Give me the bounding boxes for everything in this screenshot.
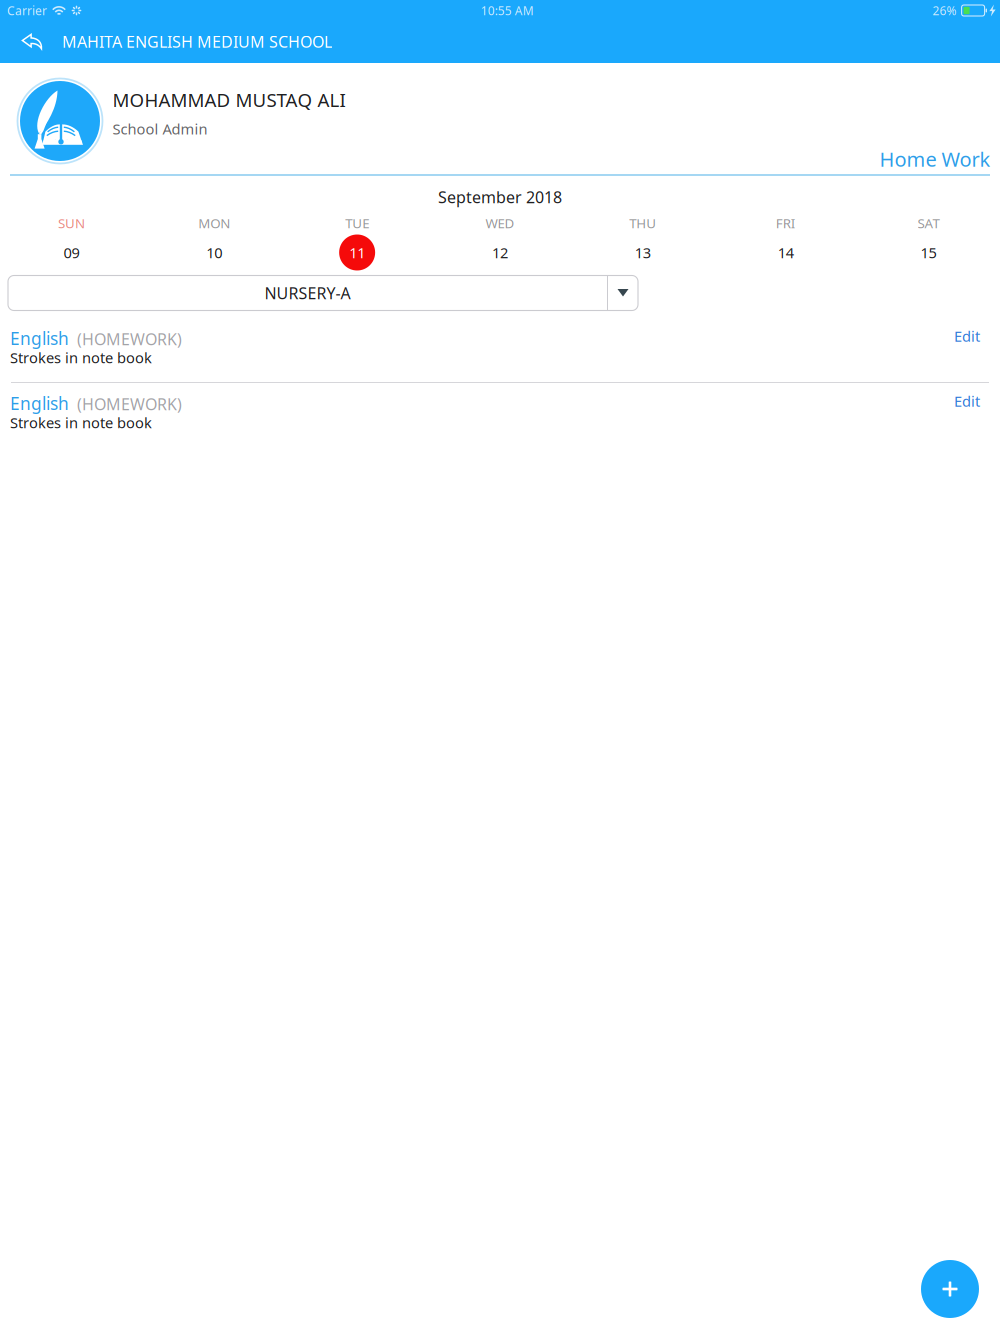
staticText: SUN <box>58 214 85 232</box>
staticText: Edit <box>954 391 980 411</box>
button[interactable]: Back <box>10 21 54 62</box>
staticText: 10 <box>206 243 222 262</box>
button[interactable]: Add homework <box>921 1260 979 1318</box>
button[interactable]: Home Work <box>872 142 997 176</box>
staticText: MON <box>198 214 230 232</box>
staticText: SAT <box>918 214 940 232</box>
button[interactable]: English <box>0 318 1000 382</box>
staticText: 11 <box>349 243 365 262</box>
button[interactable]: SUN <box>0 212 143 271</box>
button[interactable]: English <box>0 383 1000 447</box>
staticText: 13 <box>635 243 651 262</box>
button[interactable]: NURSERY-A <box>8 275 638 310</box>
staticText: September 2018 <box>438 186 562 208</box>
staticText: English <box>10 327 69 350</box>
staticText: MOHAMMAD MUSTAQ ALI <box>112 87 345 112</box>
staticText: School Admin <box>112 119 207 139</box>
button[interactable]: MON <box>143 212 286 271</box>
staticText: (HOMEWORK) <box>69 328 182 350</box>
staticText: 26% <box>933 2 957 18</box>
staticText: THU <box>629 214 656 232</box>
button[interactable]: WED <box>429 212 571 271</box>
button[interactable]: FRI <box>714 212 857 271</box>
staticText: MAHITA ENGLISH MEDIUM SCHOOL <box>62 31 332 52</box>
staticText: 14 <box>778 243 794 262</box>
button[interactable]: TUE <box>286 212 429 271</box>
staticText: 15 <box>921 243 937 262</box>
staticText: Carrier <box>7 2 47 18</box>
staticText: (HOMEWORK) <box>69 393 182 415</box>
staticText: Home Work <box>879 146 990 172</box>
staticText: Edit <box>954 326 980 346</box>
staticText: TUE <box>345 214 369 232</box>
button[interactable]: Edit <box>940 322 990 350</box>
staticText: FRI <box>776 214 796 232</box>
staticText: 09 <box>63 243 79 262</box>
staticText: 10:55 AM <box>481 2 534 18</box>
button[interactable]: Edit <box>940 387 990 415</box>
staticText: Strokes in note book <box>10 413 152 432</box>
staticText: WED <box>485 214 514 232</box>
button[interactable]: THU <box>571 212 714 271</box>
staticText: English <box>10 392 69 415</box>
staticText: 12 <box>492 243 508 262</box>
staticText: Strokes in note book <box>10 348 152 367</box>
staticText: NURSERY-A <box>264 282 350 304</box>
button[interactable]: SAT <box>857 212 1000 271</box>
